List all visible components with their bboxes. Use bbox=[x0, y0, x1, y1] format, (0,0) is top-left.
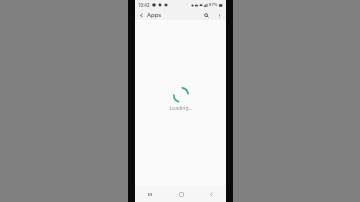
staticText: Apps bbox=[147, 11, 162, 19]
button[interactable]: Home bbox=[174, 187, 188, 201]
button[interactable]: More options bbox=[215, 11, 223, 19]
button[interactable]: Back bbox=[135, 11, 166, 19]
staticText: Loading... bbox=[169, 105, 193, 112]
other: Back bbox=[139, 13, 144, 18]
button[interactable]: Recents bbox=[143, 187, 157, 201]
button[interactable]: Search bbox=[202, 11, 210, 19]
staticText: 10:42 bbox=[138, 2, 150, 8]
staticText: 87% bbox=[209, 2, 218, 8]
button[interactable]: Back bbox=[204, 187, 218, 201]
